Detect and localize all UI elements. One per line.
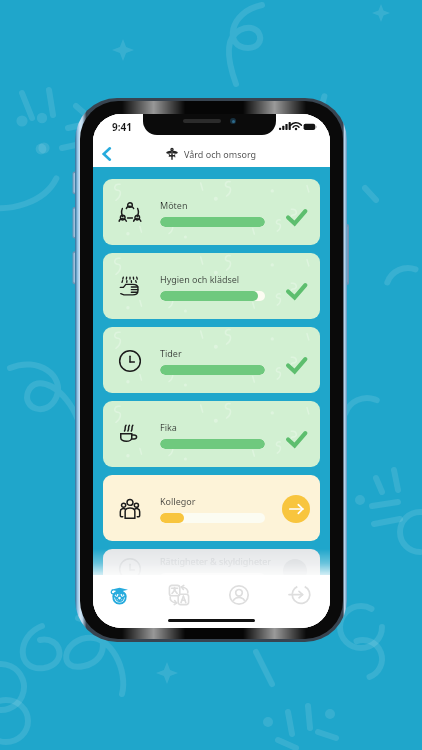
button[interactable]: Tider — [103, 327, 320, 393]
button[interactable]: Continue — [282, 495, 310, 523]
staticText: Hygien och klädsel — [160, 273, 240, 285]
button[interactable]: Fika — [103, 401, 320, 467]
button[interactable]: Back — [96, 143, 118, 165]
staticText: Vård och omsorg — [184, 148, 257, 160]
button[interactable]: Kollegor — [103, 475, 320, 541]
staticText: 9:41 — [112, 120, 132, 134]
staticText: Tider — [160, 347, 182, 359]
staticText: Möten — [160, 199, 188, 211]
button[interactable]: Möten — [103, 179, 320, 245]
staticText: Kollegor — [160, 495, 196, 507]
staticText: Fika — [160, 421, 177, 433]
button[interactable]: Hygien och klädsel — [103, 253, 320, 319]
staticText: Rättigheter & skyldigheter — [160, 555, 272, 567]
button[interactable]: Login — [277, 575, 321, 615]
button[interactable]: Home — [97, 575, 141, 615]
button[interactable]: Translate — [157, 575, 201, 615]
button[interactable]: Rättigheter & skyldigheter — [103, 549, 320, 587]
button[interactable]: Profile — [217, 575, 261, 615]
